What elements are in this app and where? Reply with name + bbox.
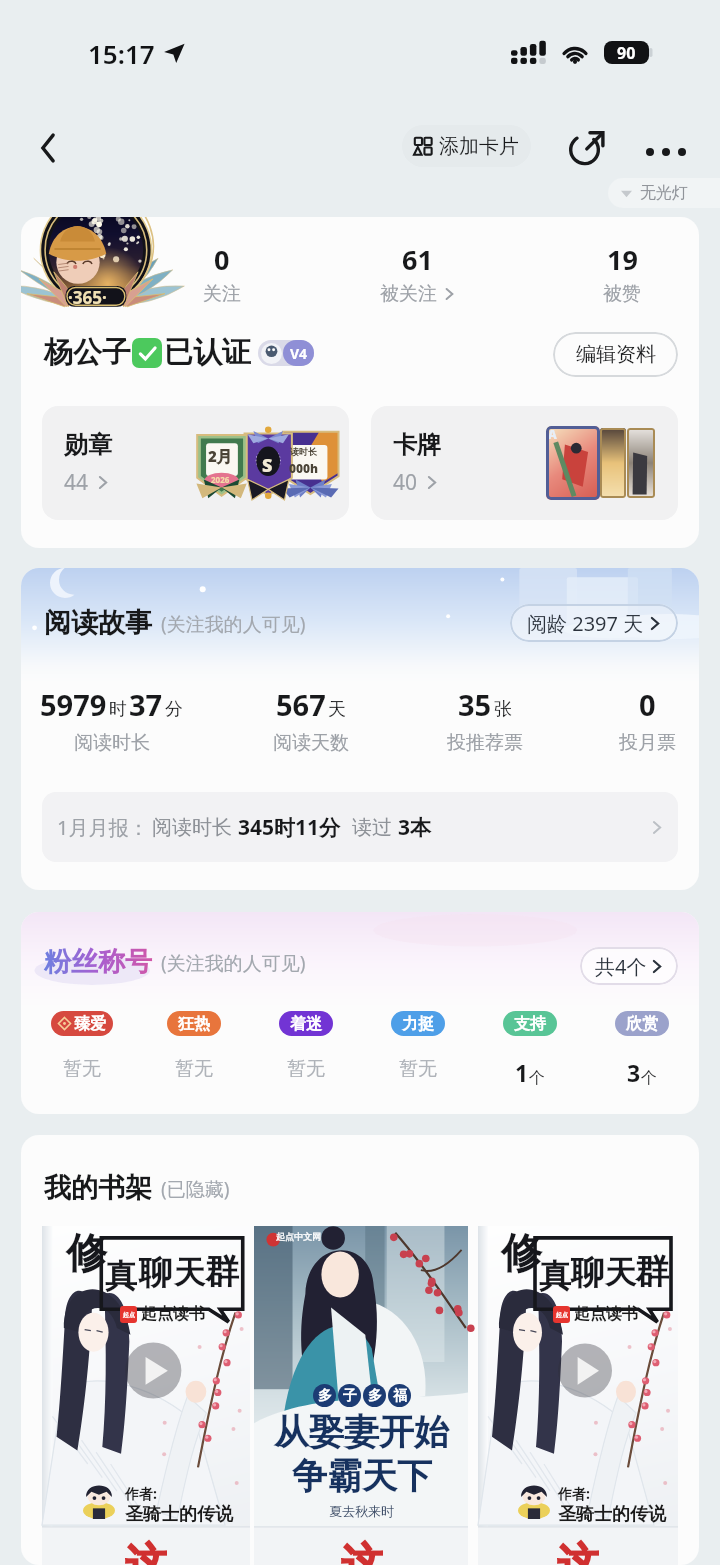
staticText: 作者: [125,1484,157,1503]
staticText: 我的书架 [44,1171,152,1205]
staticText: 被赞 [603,282,641,306]
button[interactable]: 0 [152,241,292,329]
staticText: 这 [557,1538,599,1565]
button[interactable]: 修 [42,1226,250,1565]
button[interactable]: 欣赏 [586,1011,698,1105]
staticText: (已隐藏) [161,1176,230,1202]
staticText: 天 [328,698,346,721]
staticText: 杨公子 [44,334,131,371]
button[interactable]: 0 [562,685,699,765]
staticText: 张 [494,698,512,721]
staticText: 作者: [558,1484,590,1503]
staticText: 暂无 [287,1057,325,1081]
staticText: 这 [341,1538,383,1565]
staticText: 群 [635,1250,669,1293]
staticText: ·365· [68,286,107,309]
button[interactable]: More options [639,120,691,172]
staticText: 天 [605,1253,636,1292]
button[interactable]: 修 [478,1226,678,1565]
staticText: 聊 [139,1252,172,1294]
staticText: 福 [393,1387,407,1405]
staticText: 群 [205,1250,239,1293]
button[interactable]: 狂热 [138,1011,250,1105]
staticText: 起点 [556,1311,568,1319]
staticText: 天 [174,1253,205,1292]
staticText: 3本 [398,813,432,842]
staticText: 共4个 [595,953,647,980]
button[interactable]: 35 [400,685,570,765]
staticText: 添加卡片 [439,134,519,159]
staticText: 圣骑士的传说 [125,1503,233,1526]
button[interactable]: 共4个 [580,947,678,985]
staticText: 读过 [352,815,392,840]
staticText: 卡牌 [393,430,441,460]
staticText: 关注 [203,282,241,306]
staticText: 2月 [208,446,232,466]
staticText: 夏去秋来时 [329,1503,394,1519]
staticText: 90 [617,42,636,64]
staticText: 起点读书 [141,1304,205,1324]
staticText: 无光灯 [640,183,688,203]
staticText: 多 [318,1387,332,1405]
staticText: 0 [639,685,656,724]
staticText: (关注我的人可见) [161,611,306,637]
staticText: 已认证 [164,334,251,371]
staticText: 真 [105,1256,137,1296]
button[interactable]: 567 [226,685,396,765]
staticText: 修 [501,1228,542,1280]
button[interactable]: 臻爱 [26,1011,138,1105]
staticText: 起点读书 [574,1304,638,1324]
staticText: 19 [607,241,638,278]
button[interactable]: 19 [552,241,692,329]
button[interactable]: Back [22,122,74,174]
button[interactable]: 支持 [474,1011,586,1105]
staticText: 支持 [514,1014,546,1034]
staticText: 分 [165,698,183,721]
staticText: 多 [368,1387,382,1405]
staticText: 阅龄 2397 天 [527,610,644,637]
staticText: 37 [129,685,163,724]
staticText: 投推荐票 [447,731,523,755]
staticText: 3 [627,1057,641,1088]
staticText: 投月票 [619,731,676,755]
staticText: 聊 [571,1252,604,1294]
staticText: 力挺 [402,1014,434,1034]
staticText: 2026 [211,474,230,485]
staticText: 40 [393,468,418,497]
staticText: 个 [529,1068,545,1088]
button[interactable]: 编辑资料 [553,332,678,377]
button[interactable]: 勋章 [42,406,349,520]
staticText: 1月月报： [57,814,149,841]
button[interactable]: 添加卡片 [402,125,531,167]
staticText: 暂无 [63,1057,101,1081]
staticText: 欣赏 [626,1014,658,1034]
staticText: 000h [289,460,319,476]
button[interactable]: 1月月报： [42,792,678,862]
button[interactable]: 卡牌 [371,406,678,520]
staticText: 着迷 [290,1014,322,1034]
staticText: 真 [539,1256,571,1296]
button[interactable]: 力挺 [362,1011,474,1105]
staticText: 35 [458,685,492,724]
staticText: 345时11分 [238,813,341,842]
staticText: 1 [515,1057,529,1088]
staticText: 15:17 [88,36,155,71]
staticText: 时 [109,698,127,721]
staticText: 567 [276,685,326,724]
staticText: 暂无 [399,1057,437,1081]
button[interactable]: 多 [254,1226,468,1565]
button[interactable]: 阅龄 2397 天 [510,604,678,642]
button[interactable]: Share [560,120,614,174]
staticText: 阅读天数 [273,731,349,755]
staticText: 被关注 [380,282,437,306]
staticText: 暂无 [175,1057,213,1081]
staticText: 个 [641,1068,657,1088]
button[interactable]: 着迷 [250,1011,362,1105]
button[interactable]: 5979 [26,685,196,765]
staticText: 5979 [40,685,107,724]
staticText: 臻爱 [74,1014,106,1034]
staticText: 起点 [123,1311,135,1319]
button[interactable]: 61 [347,241,487,329]
staticText: 阅读时长 [74,731,150,755]
staticText: 粉丝称号 [44,945,152,979]
